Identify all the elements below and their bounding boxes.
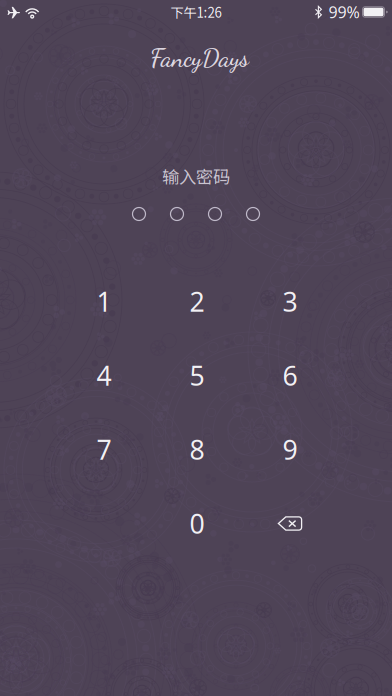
button[interactable]: 2 [150,264,243,338]
staticText: 1 [96,284,111,319]
staticText: 4 [96,358,111,393]
button[interactable]: 8 [150,412,243,486]
button[interactable]: 4 [57,338,150,412]
staticText: 7 [96,432,111,467]
staticText: 8 [189,432,204,467]
staticText: 输入密码 [162,163,230,189]
button[interactable]: Delete [243,486,336,560]
button[interactable]: 1 [57,264,150,338]
staticText: FancyDays [150,43,249,73]
staticText: 下午1:26 [170,2,221,22]
button[interactable]: 0 [150,486,243,560]
staticText: 0 [189,506,204,541]
staticText: 9 [282,432,297,467]
button[interactable]: 3 [243,264,336,338]
staticText: 3 [282,284,297,319]
button[interactable]: 6 [243,338,336,412]
button[interactable]: 7 [57,412,150,486]
button[interactable]: 5 [150,338,243,412]
staticText: 6 [282,358,297,393]
staticText: 99% [328,1,359,23]
button[interactable]: 9 [243,412,336,486]
staticText: 5 [189,358,204,393]
staticText: 2 [189,284,204,319]
